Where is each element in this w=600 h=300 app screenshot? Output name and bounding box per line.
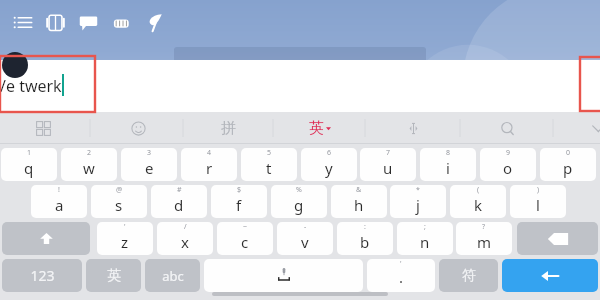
button[interactable]: ! bbox=[31, 185, 87, 218]
button[interactable]: 0 bbox=[540, 148, 596, 181]
staticText: 1 bbox=[27, 148, 32, 158]
staticText: 符 bbox=[462, 267, 476, 285]
staticText: ; bbox=[424, 222, 426, 232]
button[interactable]: Keyboard tool bbox=[391, 112, 435, 144]
staticText: q bbox=[24, 158, 34, 178]
staticText: b bbox=[360, 232, 370, 252]
button[interactable]: & bbox=[331, 185, 387, 218]
staticText: s bbox=[115, 195, 123, 215]
staticText: i bbox=[446, 158, 450, 178]
button[interactable]: 8 bbox=[420, 148, 476, 181]
button[interactable]: Backspace bbox=[517, 222, 598, 255]
staticText: @ bbox=[116, 185, 123, 195]
staticText: / bbox=[184, 222, 187, 232]
staticText: 7 bbox=[386, 148, 391, 158]
button[interactable]: Keyboard tool bbox=[485, 112, 529, 144]
staticText: * bbox=[416, 185, 420, 195]
button[interactable]: $ bbox=[211, 185, 267, 218]
button[interactable]: 2 bbox=[61, 148, 117, 181]
button[interactable]: 符 bbox=[439, 259, 498, 292]
staticText: 4 bbox=[207, 148, 212, 158]
button[interactable]: # bbox=[151, 185, 207, 218]
staticText: 英 bbox=[107, 267, 121, 285]
button[interactable]: : bbox=[337, 222, 393, 255]
button[interactable]: 9 bbox=[480, 148, 536, 181]
staticText: 3 bbox=[147, 148, 152, 158]
button[interactable]: Feather bbox=[138, 0, 171, 44]
staticText: 9 bbox=[506, 148, 511, 158]
button[interactable]: Bag bbox=[39, 0, 72, 44]
staticText: 8 bbox=[446, 148, 451, 158]
button[interactable]: Enter bbox=[502, 259, 598, 292]
button[interactable]: Messages bbox=[72, 0, 105, 44]
staticText: h bbox=[354, 195, 364, 215]
staticText: d bbox=[174, 195, 184, 215]
staticText: v bbox=[301, 232, 309, 252]
button[interactable]: ( bbox=[450, 185, 506, 218]
staticText: l bbox=[536, 195, 540, 215]
staticText: ! bbox=[58, 185, 60, 195]
button[interactable]: - bbox=[277, 222, 333, 255]
staticText: 6 bbox=[327, 148, 332, 158]
staticText: ' bbox=[124, 222, 126, 232]
button[interactable]: ' bbox=[97, 222, 153, 255]
staticText: p bbox=[563, 158, 573, 178]
button[interactable]: Menu bbox=[6, 0, 39, 44]
staticText: 0 bbox=[566, 148, 571, 158]
staticText: # bbox=[177, 185, 182, 195]
staticText: a bbox=[55, 195, 64, 215]
staticText: m bbox=[477, 232, 492, 252]
button[interactable]: ; bbox=[397, 222, 453, 255]
button[interactable]: / bbox=[157, 222, 213, 255]
staticText: y bbox=[325, 158, 333, 178]
staticText: e bbox=[145, 158, 154, 178]
button[interactable]: % bbox=[271, 185, 327, 218]
button[interactable]: 英 bbox=[296, 112, 344, 144]
staticText: 5 bbox=[267, 148, 272, 158]
staticText: ( bbox=[477, 185, 480, 195]
staticText: . bbox=[399, 267, 404, 287]
button[interactable]: abc bbox=[145, 259, 200, 292]
button[interactable]: Keyboard tool bbox=[21, 112, 65, 144]
button[interactable]: ~ bbox=[217, 222, 273, 255]
button[interactable]: * bbox=[390, 185, 446, 218]
staticText: % bbox=[296, 185, 302, 195]
button[interactable]: 7 bbox=[360, 148, 416, 181]
button[interactable]: 6 bbox=[301, 148, 357, 181]
button[interactable]: Keyboard tool bbox=[116, 112, 160, 144]
button[interactable]: 3 bbox=[121, 148, 177, 181]
staticText: $ bbox=[237, 185, 242, 195]
staticText: t bbox=[266, 158, 272, 178]
button[interactable]: @ bbox=[91, 185, 147, 218]
staticText: o bbox=[503, 158, 513, 178]
button[interactable]: Shift bbox=[2, 222, 90, 255]
staticText: 拼 bbox=[221, 119, 236, 138]
button[interactable]: 5 bbox=[241, 148, 297, 181]
button[interactable]: ? bbox=[456, 222, 512, 255]
staticText: z bbox=[121, 232, 129, 252]
button[interactable]: /e twerk bbox=[0, 60, 600, 112]
staticText: & bbox=[356, 185, 362, 195]
button[interactable]: Fist bbox=[105, 0, 138, 44]
staticText: ) bbox=[537, 185, 540, 195]
button[interactable]: ' bbox=[367, 259, 435, 292]
button[interactable]: ) bbox=[510, 185, 566, 218]
staticText: c bbox=[241, 232, 249, 252]
staticText: n bbox=[420, 232, 430, 252]
button[interactable]: 123 bbox=[2, 259, 82, 292]
staticText: 2 bbox=[87, 148, 92, 158]
staticText: : bbox=[364, 222, 366, 232]
staticText: ' bbox=[400, 259, 402, 269]
button[interactable]: 英 bbox=[86, 259, 141, 292]
button[interactable]: 4 bbox=[181, 148, 237, 181]
button[interactable]: Space bbox=[204, 259, 363, 292]
staticText: j bbox=[416, 195, 420, 215]
staticText: x bbox=[181, 232, 189, 252]
staticText: /e twerk bbox=[0, 75, 62, 97]
button[interactable]: Keyboard tool bbox=[575, 112, 600, 144]
staticText: 英 bbox=[309, 119, 324, 138]
staticText: ~ bbox=[243, 222, 248, 232]
button[interactable]: 1 bbox=[1, 148, 57, 181]
button[interactable]: 拼 bbox=[206, 112, 250, 144]
staticText: abc bbox=[162, 267, 184, 285]
